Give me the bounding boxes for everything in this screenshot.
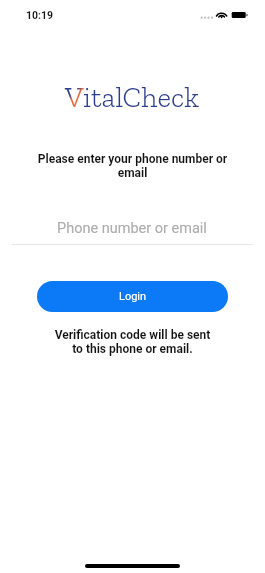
staticText: 10:19 <box>26 9 54 21</box>
staticText: Please enter your phone number or email <box>26 152 239 180</box>
staticText: VitalCheck <box>65 80 200 115</box>
button[interactable]: Login <box>37 281 228 312</box>
staticText: Verification code will be sent to this p… <box>0 328 265 356</box>
button[interactable]: Phone number or email <box>12 218 253 245</box>
other: Status icons <box>195 0 265 28</box>
staticText: Phone number or email <box>57 220 207 237</box>
staticText: Login <box>119 290 147 303</box>
